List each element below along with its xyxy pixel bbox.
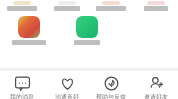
staticText: 帮助与反馈 bbox=[96, 93, 126, 99]
button[interactable] bbox=[0, 16, 58, 45]
button[interactable]: 帮助与反馈 bbox=[89, 71, 133, 99]
button[interactable]: 邀请好友 bbox=[134, 71, 178, 99]
button[interactable] bbox=[58, 16, 116, 45]
button[interactable] bbox=[0, 1, 44, 11]
button[interactable] bbox=[45, 1, 89, 11]
button[interactable]: 沟通喜好 bbox=[45, 71, 89, 99]
staticText: 沟通喜好 bbox=[55, 93, 79, 99]
staticText: 我的消息 bbox=[10, 93, 34, 99]
staticText: 邀请好友 bbox=[144, 93, 168, 99]
button[interactable] bbox=[134, 1, 178, 11]
button[interactable]: 我的消息 bbox=[0, 71, 44, 99]
button[interactable] bbox=[89, 1, 133, 11]
